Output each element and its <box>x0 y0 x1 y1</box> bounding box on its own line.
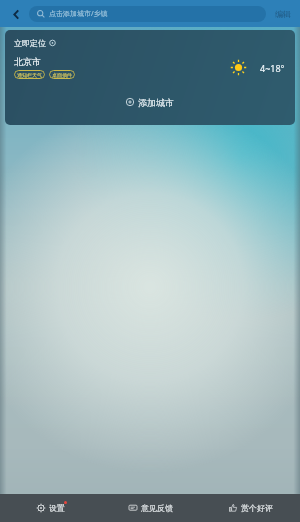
staticText: 设置 <box>49 503 65 513</box>
button[interactable]: 北京市 <box>5 56 295 79</box>
button[interactable]: 立即定位 <box>14 38 56 48</box>
button[interactable]: 添加城市 <box>5 90 295 114</box>
staticText: 4~18° <box>260 62 285 74</box>
button[interactable]: 桌面插件 <box>49 70 75 79</box>
staticText: 通知栏天气 <box>17 72 42 78</box>
staticText: 添加城市 <box>138 97 174 108</box>
staticText: 意见反馈 <box>141 503 173 513</box>
button[interactable]: 返回 <box>6 4 26 24</box>
staticText: 赏个好评 <box>241 503 273 513</box>
button[interactable]: 意见反馈 <box>100 494 200 522</box>
staticText: 立即定位 <box>14 38 46 48</box>
staticText: 点击添加城市/乡镇 <box>49 9 108 19</box>
staticText: 编辑 <box>275 9 291 19</box>
button[interactable]: 点击添加城市/乡镇 <box>29 6 266 22</box>
button[interactable]: 通知栏天气 <box>14 70 45 79</box>
button[interactable]: 编辑 <box>272 6 294 22</box>
button[interactable]: 赏个好评 <box>200 494 300 522</box>
button[interactable]: 设置 <box>0 494 100 522</box>
staticText: 桌面插件 <box>52 72 72 78</box>
staticText: 北京市 <box>14 56 41 67</box>
